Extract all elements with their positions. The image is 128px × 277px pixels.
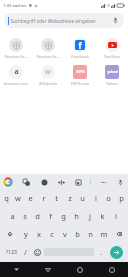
button[interactable]: W <box>32 63 64 88</box>
staticText: a <box>14 67 19 77</box>
button[interactable]: Home <box>64 262 96 277</box>
button[interactable]: a <box>6 207 18 225</box>
button[interactable]: m <box>97 225 110 243</box>
staticText: d <box>35 211 40 221</box>
staticText: YouTube <box>96 54 128 59</box>
staticText: f <box>49 211 52 221</box>
button[interactable]: Suchbegriff oder Webadresse eingeben <box>4 13 124 28</box>
staticText: Amazon.com <box>0 81 32 86</box>
staticText: yahoo! <box>107 70 118 74</box>
button[interactable]: z <box>63 189 76 207</box>
button[interactable]: Shift <box>0 225 19 243</box>
button[interactable]: n <box>84 225 97 243</box>
button[interactable]: l <box>109 207 122 225</box>
staticText: p <box>119 193 124 203</box>
staticText: v <box>63 229 67 239</box>
button[interactable]: / <box>20 243 31 261</box>
button[interactable]: b <box>71 225 84 243</box>
button[interactable]: e <box>24 189 37 207</box>
staticText: Wikipedia <box>32 81 64 86</box>
button[interactable]: g <box>57 207 70 225</box>
button[interactable]: u <box>76 189 89 207</box>
button[interactable]: Clipboard <box>73 177 83 187</box>
staticText: q <box>4 193 9 203</box>
button[interactable]: Voice search <box>111 16 120 25</box>
staticText: s <box>23 211 27 221</box>
button[interactable]: x <box>32 225 45 243</box>
button[interactable]: Google <box>3 177 13 187</box>
staticText: Random In… <box>32 54 64 59</box>
button[interactable]: Random In… <box>32 36 64 61</box>
staticText: g <box>61 211 66 221</box>
staticText: z <box>68 193 72 203</box>
button[interactable]: Go <box>110 246 123 259</box>
button[interactable]: y <box>19 225 32 243</box>
button[interactable]: ?123 <box>2 243 20 261</box>
button[interactable]: More options <box>98 177 108 187</box>
button[interactable]: Stickers <box>39 177 49 187</box>
staticText: ESPN.com <box>64 81 96 86</box>
button[interactable]: o <box>102 189 115 207</box>
staticText: . <box>100 248 102 257</box>
button[interactable]: s <box>18 207 31 225</box>
button[interactable]: w <box>12 189 24 207</box>
staticText: f <box>78 40 82 50</box>
button[interactable]: ESPN <box>64 63 96 88</box>
staticText: Facebook <box>64 54 96 59</box>
staticText: u <box>80 193 85 203</box>
staticText: ESPN <box>76 70 85 74</box>
staticText: t <box>55 193 58 203</box>
staticText: j <box>89 211 91 221</box>
staticText: k <box>100 211 105 221</box>
button[interactable]: Translate <box>21 177 31 187</box>
button[interactable]: t <box>50 189 63 207</box>
staticText: h <box>74 211 79 221</box>
button[interactable]: . <box>95 243 106 261</box>
button[interactable]: j <box>83 207 96 225</box>
button[interactable]: c <box>45 225 58 243</box>
staticText: Random In… <box>0 54 32 59</box>
button[interactable]: a <box>0 63 32 88</box>
button[interactable]: p <box>115 189 128 207</box>
staticText: e <box>28 193 33 203</box>
button[interactable]: Voice input <box>115 177 125 187</box>
staticText: ?123 <box>6 249 17 256</box>
button[interactable]: f <box>44 207 57 225</box>
staticText: b <box>75 229 80 239</box>
staticText: m <box>100 229 108 239</box>
staticText: Yahoo <box>96 81 128 86</box>
button[interactable]: d <box>31 207 44 225</box>
staticText: r <box>42 193 46 203</box>
button[interactable]: GIF <box>56 177 66 187</box>
staticText: x <box>37 229 41 239</box>
staticText: 0 <box>107 3 110 8</box>
button[interactable]: Hide keyboard <box>0 262 32 277</box>
staticText: l <box>115 211 117 221</box>
staticText: y <box>24 229 28 239</box>
button[interactable]: Back <box>32 262 64 277</box>
staticText: o <box>106 193 111 203</box>
staticText: W <box>45 68 51 76</box>
staticText: / <box>24 248 27 257</box>
button[interactable]: f <box>64 36 96 61</box>
button[interactable]: Backspace <box>110 225 128 243</box>
staticText: i <box>95 193 97 203</box>
button[interactable]: Random In… <box>0 36 32 61</box>
button[interactable]: h <box>70 207 83 225</box>
staticText: a <box>10 211 15 221</box>
button[interactable]: r <box>37 189 50 207</box>
staticText: n <box>88 229 93 239</box>
button[interactable]: i <box>89 189 102 207</box>
button[interactable]: Recents <box>96 262 128 277</box>
button[interactable]: v <box>58 225 71 243</box>
staticText: Suchbegriff oder Webadresse eingeben <box>10 18 96 24</box>
staticText: w <box>15 193 21 203</box>
staticText: 1:43 nachm. <box>3 3 27 9</box>
button[interactable]: Emoji <box>31 243 43 261</box>
button[interactable]: k <box>96 207 109 225</box>
button[interactable]: YouTube <box>96 36 128 61</box>
button[interactable]: yahoo! <box>96 63 128 88</box>
button[interactable]: q <box>0 189 12 207</box>
staticText: c <box>50 229 54 239</box>
